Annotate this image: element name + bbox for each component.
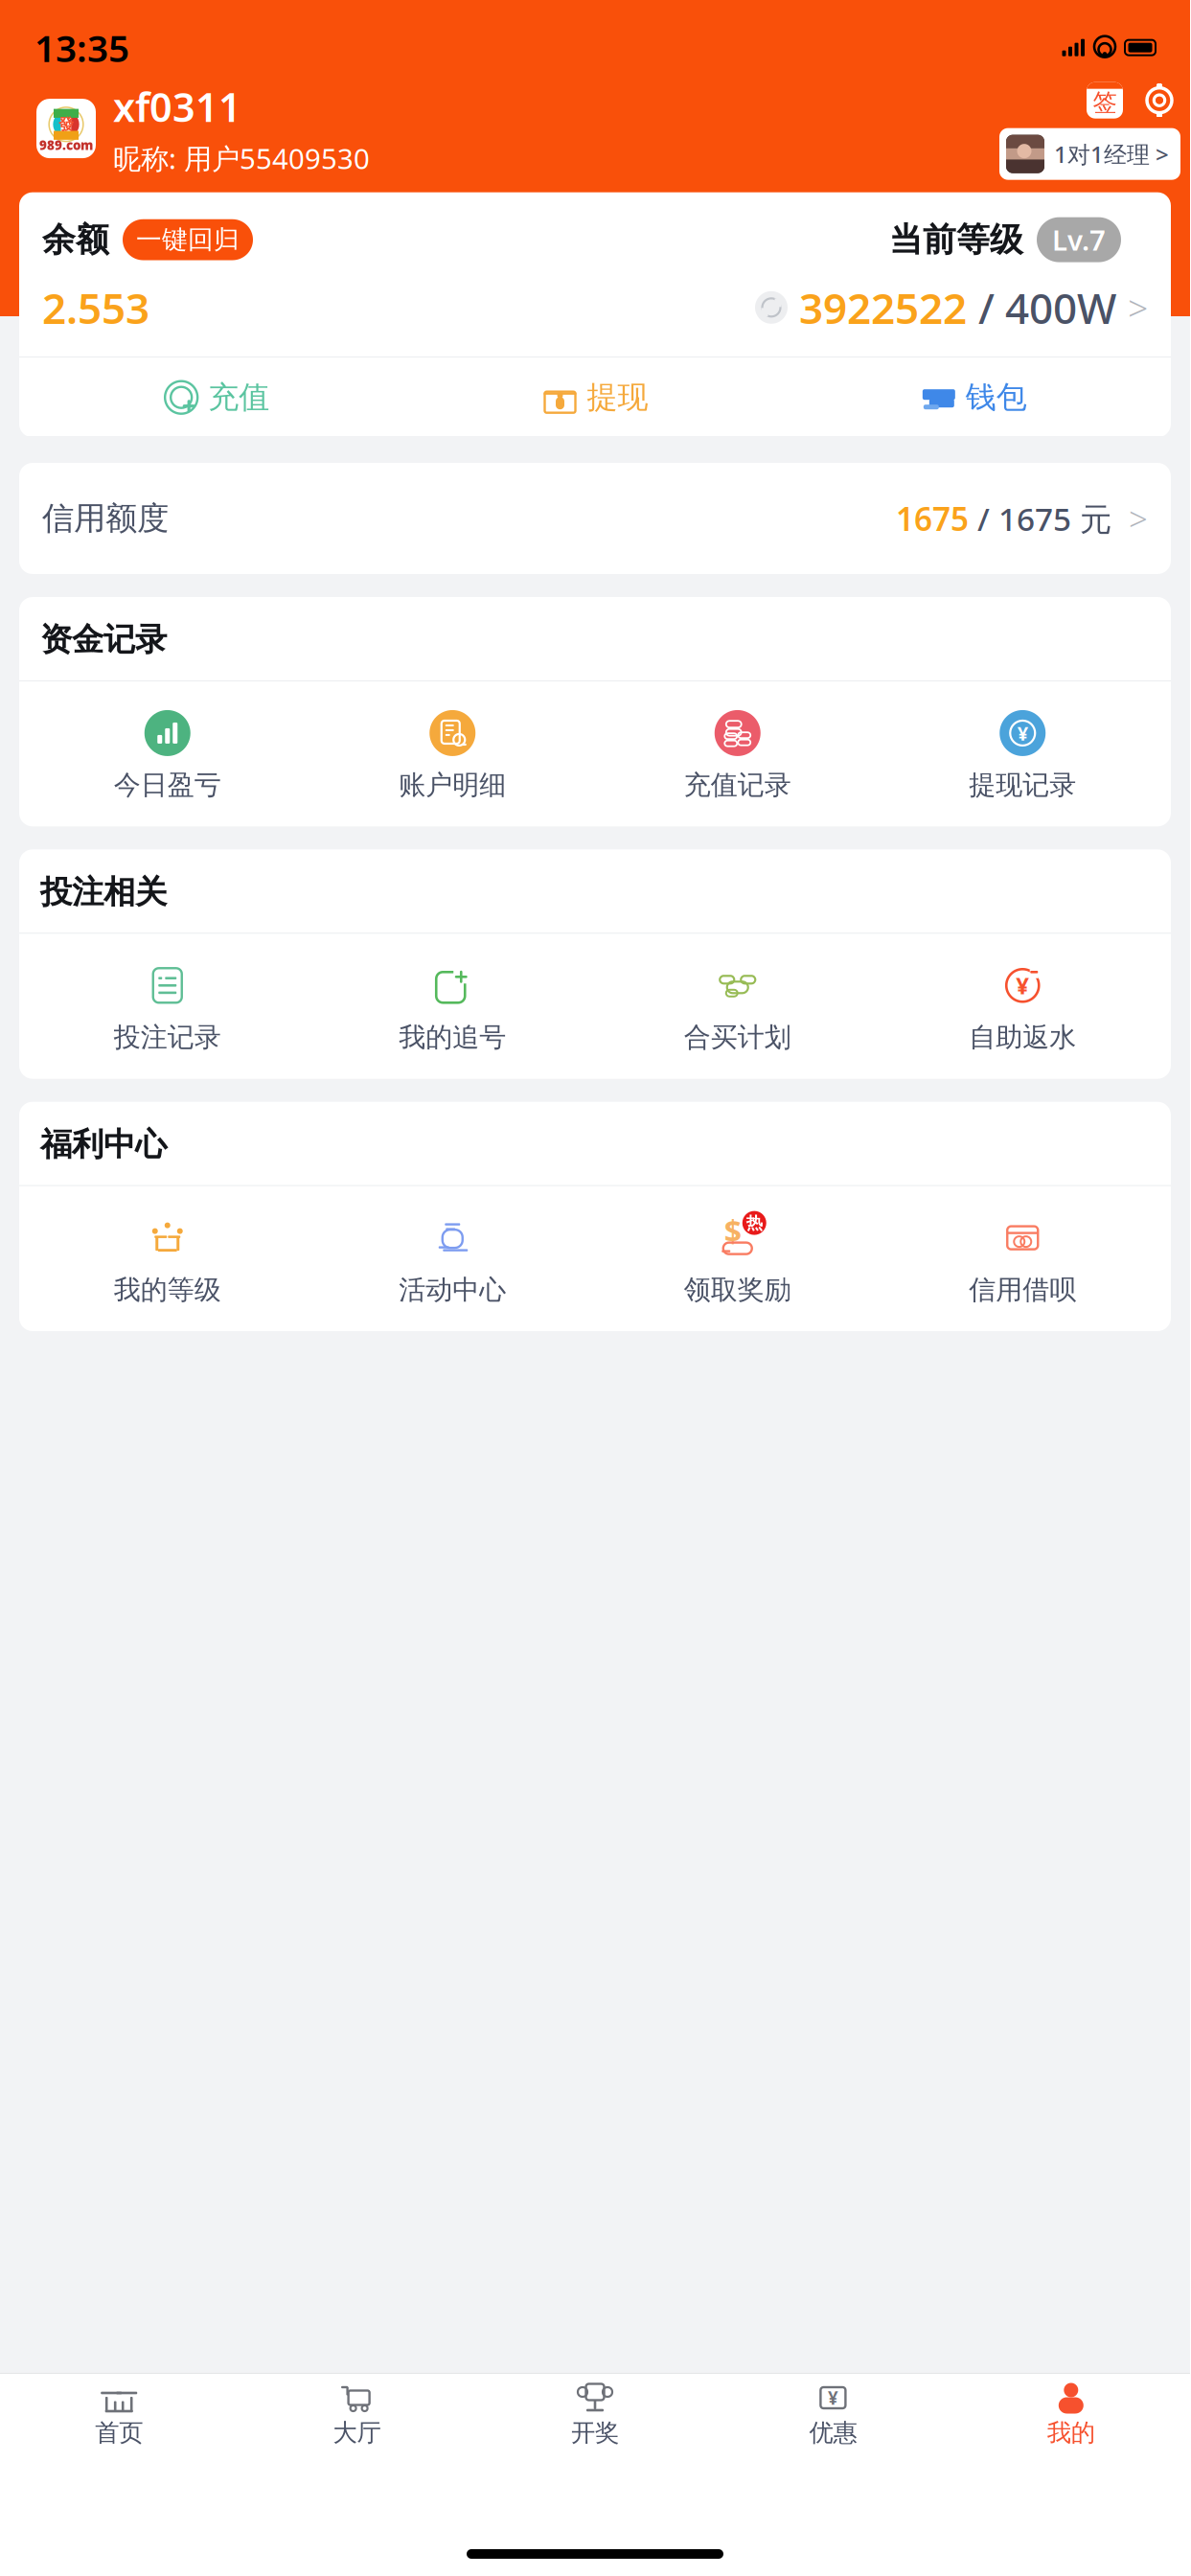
staticText: 提现 bbox=[587, 379, 648, 416]
button[interactable]: 开奖 bbox=[476, 2374, 714, 2448]
staticText: 投注相关 bbox=[40, 872, 167, 912]
staticText: 活动中心 bbox=[399, 1273, 506, 1306]
staticText: 合买计划 bbox=[684, 1021, 791, 1054]
staticText: 签 bbox=[1093, 88, 1117, 118]
button[interactable]: 设置 bbox=[1142, 83, 1177, 118]
button[interactable]: 我的追号 bbox=[310, 959, 595, 1058]
staticText: ¥ bbox=[828, 2386, 838, 2410]
staticText: 信用额度 bbox=[42, 499, 169, 538]
staticText: 大厅 bbox=[333, 2418, 381, 2448]
staticText: 投注记录 bbox=[114, 1021, 221, 1054]
button[interactable]: ¥ bbox=[880, 959, 1165, 1058]
staticText: ¥ bbox=[1017, 720, 1028, 746]
staticText: 充值记录 bbox=[684, 768, 791, 801]
staticText: 我的等级 bbox=[114, 1273, 221, 1306]
staticText: 优惠 bbox=[809, 2418, 857, 2448]
staticText: 当前等级 bbox=[889, 219, 1023, 260]
button[interactable]: 1对1经理 > bbox=[999, 128, 1180, 180]
staticText: 昵称: 用户55409530 bbox=[113, 139, 370, 177]
button[interactable]: 信用额度 bbox=[0, 463, 1190, 574]
staticText: 提现记录 bbox=[969, 768, 1076, 801]
button[interactable]: 充值 bbox=[27, 369, 406, 426]
button[interactable]: ¥ bbox=[880, 706, 1165, 805]
staticText: 2.553 bbox=[42, 279, 149, 335]
button[interactable]: 一键回归 bbox=[123, 219, 253, 260]
staticText: > bbox=[1128, 284, 1148, 331]
button[interactable]: 充值记录 bbox=[595, 706, 880, 805]
staticText: 账户明细 bbox=[399, 768, 506, 801]
staticText: 3922522 bbox=[799, 279, 967, 335]
button[interactable]: 信用借呗 bbox=[880, 1211, 1165, 1310]
button[interactable]: 账户明细 bbox=[310, 706, 595, 805]
staticText: 余额 bbox=[42, 219, 109, 260]
staticText: ¥ bbox=[1016, 970, 1029, 1001]
staticText: 今日盈亏 bbox=[114, 768, 221, 801]
staticText: 一键回归 bbox=[136, 224, 240, 255]
button[interactable]: 签到 bbox=[1087, 82, 1123, 119]
staticText: 1675 bbox=[896, 497, 969, 540]
button[interactable]: 大厅 bbox=[238, 2374, 476, 2448]
button[interactable]: 钱包 bbox=[784, 369, 1163, 426]
staticText: / 1675 元 bbox=[969, 497, 1111, 540]
button[interactable]: 合买计划 bbox=[595, 959, 880, 1058]
staticText: $ bbox=[724, 1211, 741, 1251]
staticText: Lv.7 bbox=[1052, 221, 1106, 258]
staticText: 钱包 bbox=[966, 379, 1027, 416]
staticText: 首页 bbox=[95, 2418, 143, 2448]
staticText: xf0311 bbox=[113, 80, 241, 133]
button[interactable]: 我的等级 bbox=[25, 1211, 310, 1310]
staticText: 信用借呗 bbox=[969, 1273, 1076, 1306]
staticText: 自助返水 bbox=[969, 1021, 1076, 1054]
button[interactable]: 我的 bbox=[952, 2374, 1190, 2448]
button[interactable]: 首页 bbox=[0, 2374, 238, 2448]
button[interactable]: $ bbox=[595, 1211, 880, 1310]
button[interactable]: 今日盈亏 bbox=[25, 706, 310, 805]
button[interactable]: ¥ bbox=[714, 2374, 952, 2448]
staticText: 發 bbox=[58, 115, 74, 134]
staticText: / 400W bbox=[978, 279, 1116, 335]
staticText: 我的 bbox=[1047, 2418, 1095, 2448]
staticText: > bbox=[1111, 496, 1148, 540]
staticText: 福利中心 bbox=[40, 1125, 167, 1164]
staticText: 热 bbox=[746, 1213, 763, 1233]
staticText: 13:35 bbox=[34, 23, 129, 72]
button[interactable]: 發 bbox=[36, 80, 370, 177]
staticText: 我的追号 bbox=[399, 1021, 506, 1054]
button[interactable]: 3922522 bbox=[755, 279, 1148, 335]
staticText: 开奖 bbox=[571, 2418, 619, 2448]
staticText: 1对1经理 > bbox=[1054, 139, 1169, 169]
button[interactable]: 提现 bbox=[406, 369, 784, 426]
staticText: 领取奖励 bbox=[684, 1273, 791, 1306]
staticText: 充值 bbox=[208, 379, 269, 416]
button[interactable]: 活动中心 bbox=[310, 1211, 595, 1310]
staticText: 989.com bbox=[39, 136, 93, 153]
button[interactable]: 投注记录 bbox=[25, 959, 310, 1058]
staticText: 资金记录 bbox=[40, 620, 167, 659]
